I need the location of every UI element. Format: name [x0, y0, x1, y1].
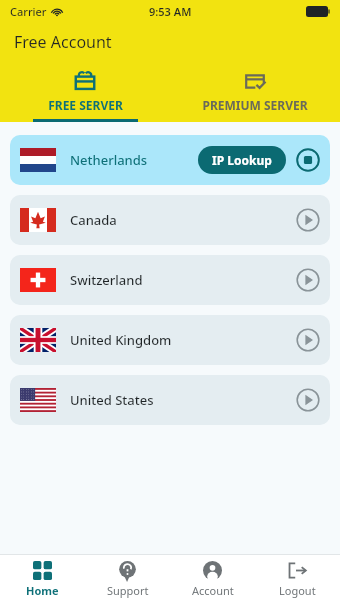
staticText: Canada [70, 211, 117, 229]
staticText: Carrier [10, 4, 47, 19]
staticText: Logout [279, 583, 316, 598]
staticText: Home [26, 583, 59, 598]
button[interactable]: United Kingdom [10, 315, 330, 365]
staticText: Switzerland [70, 271, 143, 289]
staticText: Account [192, 583, 234, 598]
button[interactable]: Switzerland [10, 255, 330, 305]
staticText: United Kingdom [70, 331, 172, 349]
staticText: IP Lookup [212, 152, 272, 168]
button[interactable]: Canada [10, 195, 330, 245]
button[interactable]: Support [85, 555, 170, 604]
button[interactable]: Connect to United Kingdom [296, 328, 320, 352]
button[interactable]: Logout [255, 555, 340, 604]
button[interactable]: Connect to United States [296, 388, 320, 412]
button[interactable]: IP Lookup [198, 146, 286, 174]
button[interactable]: Home [0, 555, 85, 604]
button[interactable]: Connect to Switzerland [296, 268, 320, 292]
button[interactable]: FREE SERVER [0, 62, 170, 122]
staticText: United States [70, 391, 154, 409]
button[interactable]: United States [10, 375, 330, 425]
button[interactable]: Connect to Canada [296, 208, 320, 232]
button[interactable]: Netherlands [10, 135, 330, 185]
button[interactable]: PREMIUM SERVER [170, 62, 340, 122]
staticText: FREE SERVER [48, 97, 123, 113]
staticText: Netherlands [70, 151, 148, 169]
staticText: PREMIUM SERVER [202, 97, 308, 113]
button[interactable]: Account [170, 555, 255, 604]
button[interactable]: Stop connection [296, 148, 320, 172]
staticText: Free Account [14, 31, 112, 53]
staticText: 9:53 AM [149, 4, 192, 19]
staticText: Support [107, 583, 149, 598]
